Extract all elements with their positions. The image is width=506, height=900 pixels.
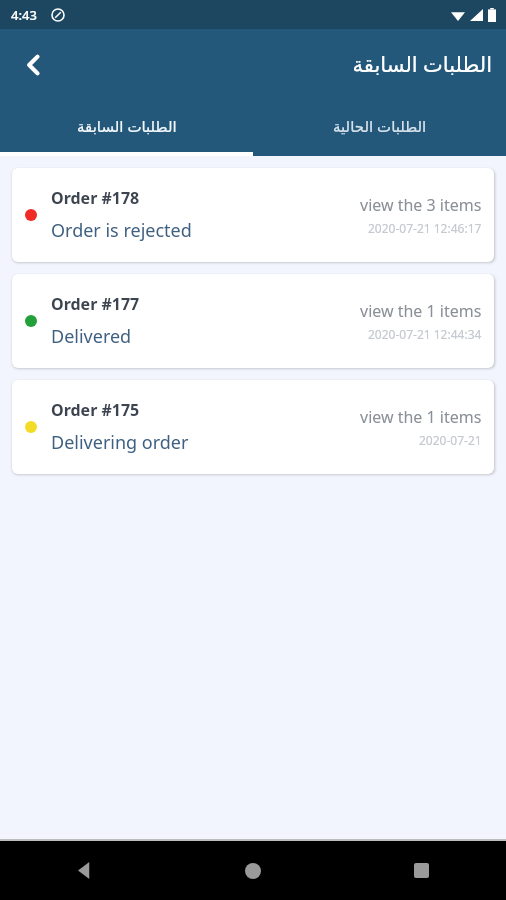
staticText: الطلبات السابقة	[77, 116, 177, 136]
staticText: view the 1 items	[360, 300, 482, 322]
button[interactable]: Order #178	[12, 168, 494, 262]
staticText: view the 1 items	[360, 406, 482, 428]
staticText: Order #177	[51, 293, 140, 315]
button[interactable]: الطلبات السابقة	[0, 100, 253, 152]
staticText: 2020-07-21 12:44:34	[368, 326, 482, 342]
staticText: Order #178	[51, 187, 140, 209]
button[interactable]: Order #177	[12, 274, 494, 368]
button[interactable]: Back	[10, 41, 58, 89]
button[interactable]: Home	[168, 841, 337, 900]
button[interactable]: الطلبات الحالية	[253, 100, 506, 152]
staticText: Delivering order	[51, 430, 189, 455]
button[interactable]: Order #175	[12, 380, 494, 474]
staticText: Delivered	[51, 324, 132, 349]
staticText: الطلبات السابقة	[352, 50, 492, 79]
button[interactable]: Back	[0, 841, 168, 900]
staticText: 4:43	[11, 6, 37, 24]
staticText: view the 3 items	[360, 194, 482, 216]
staticText: Order #175	[51, 399, 140, 421]
button[interactable]: Recent apps	[337, 841, 506, 900]
staticText: 2020-07-21	[419, 432, 482, 448]
staticText: الطلبات الحالية	[333, 116, 427, 136]
staticText: Order is rejected	[51, 218, 192, 243]
staticText: 2020-07-21 12:46:17	[368, 220, 482, 236]
